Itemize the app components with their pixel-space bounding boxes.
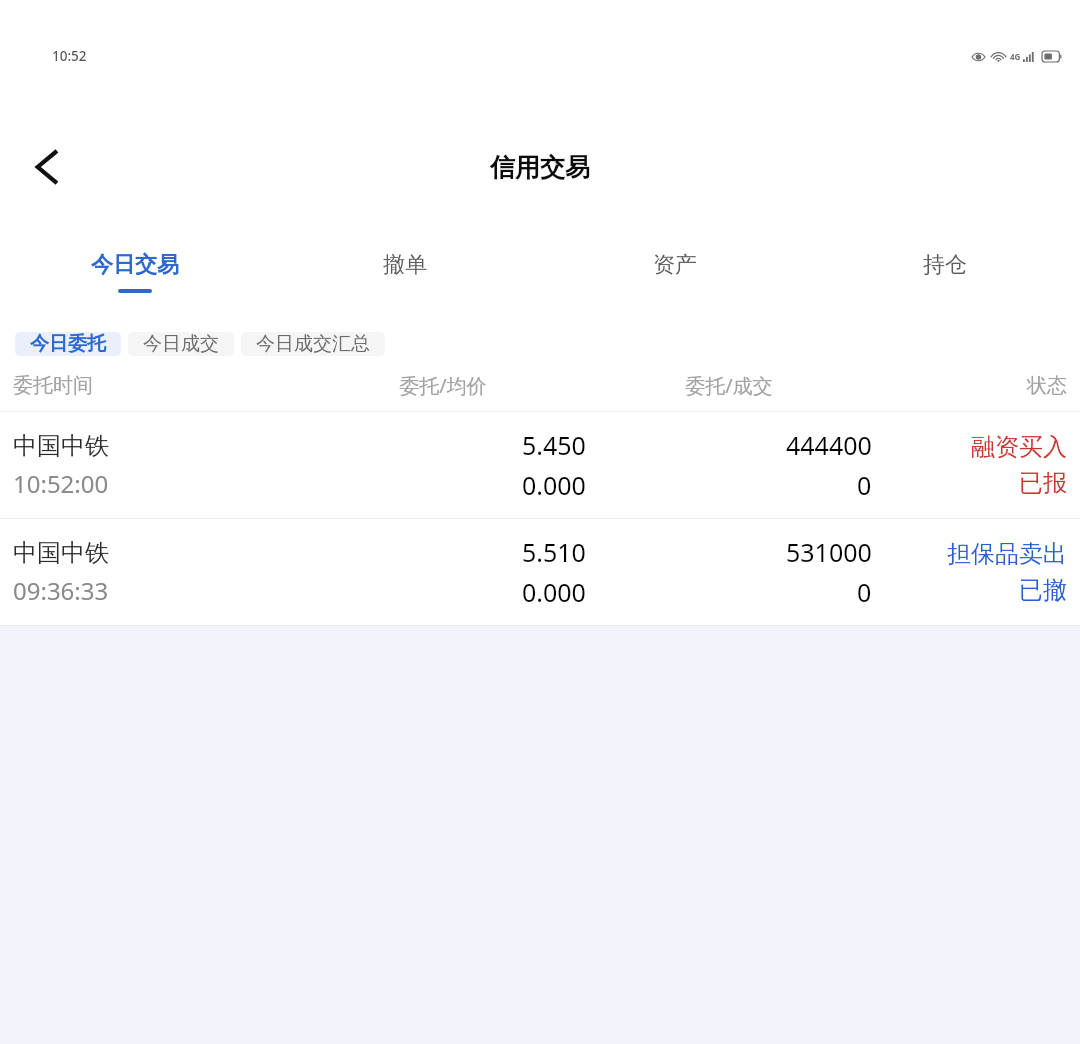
staticText: 中国中铁 (13, 538, 109, 568)
staticText: 4G (1010, 51, 1021, 62)
staticText: 今日成交 (143, 332, 219, 356)
staticText: 今日委托 (30, 332, 106, 356)
staticText: 0 (857, 468, 872, 502)
staticText: 今日交易 (91, 251, 179, 279)
button[interactable]: 资产 (540, 222, 810, 322)
button[interactable]: 今日委托 (15, 332, 121, 356)
staticText: 资产 (653, 251, 697, 279)
staticText: 中国中铁 (13, 431, 109, 461)
staticText: 状态 (872, 373, 1067, 398)
staticText: 0 (857, 575, 872, 609)
staticText: 今日成交汇总 (256, 332, 370, 356)
staticText: 委托/成交 (586, 372, 872, 399)
staticText: 444400 (786, 428, 872, 462)
staticText: 信用交易 (490, 152, 590, 183)
button[interactable]: 今日交易 (0, 222, 270, 322)
staticText: 0.000 (522, 468, 586, 502)
staticText: 531000 (786, 535, 872, 569)
staticText: 5.510 (522, 535, 586, 569)
staticText: 融资买入 (971, 432, 1067, 462)
button[interactable]: 今日成交 (128, 332, 234, 356)
staticText: 委托/均价 (300, 372, 586, 399)
staticText: 撤单 (383, 251, 427, 279)
staticText: 09:36:33 (13, 574, 109, 607)
staticText: 委托时间 (13, 373, 300, 398)
staticText: 已撤 (1019, 575, 1067, 605)
staticText: 0.000 (522, 575, 586, 609)
button[interactable]: 中国中铁 (0, 519, 1080, 626)
button[interactable]: 今日成交汇总 (241, 332, 385, 356)
staticText: 已报 (1019, 468, 1067, 498)
staticText: 5.450 (522, 428, 586, 462)
staticText: 持仓 (923, 251, 967, 279)
button[interactable]: Back (10, 131, 82, 203)
button[interactable]: 撤单 (270, 222, 540, 322)
staticText: 担保品卖出 (947, 539, 1067, 569)
button[interactable]: 中国中铁 (0, 412, 1080, 519)
staticText: 10:52 (52, 47, 87, 65)
button[interactable]: 持仓 (810, 222, 1080, 322)
staticText: 10:52:00 (13, 467, 109, 500)
